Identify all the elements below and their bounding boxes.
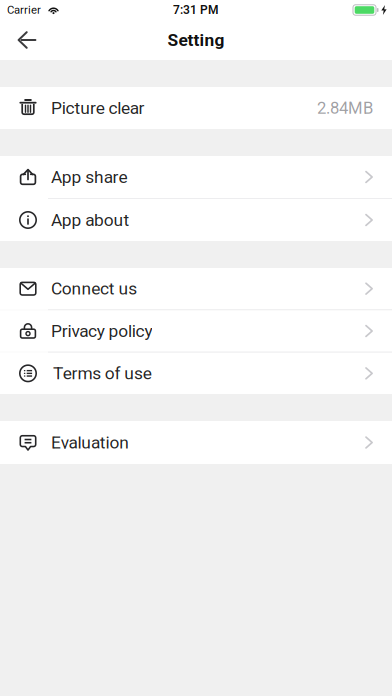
button[interactable]: Terms of use	[0, 353, 392, 394]
staticText: App about	[51, 210, 129, 230]
staticText: Connect us	[51, 278, 137, 299]
button[interactable]: App about	[0, 199, 392, 241]
staticText: Terms of use	[53, 363, 152, 383]
button[interactable]: Evaluation	[0, 421, 392, 464]
staticText: Picture clear	[51, 98, 145, 118]
button[interactable]: App share	[0, 156, 392, 198]
staticText: 2.84MB	[317, 98, 373, 118]
staticText: Privacy policy	[51, 321, 152, 341]
staticText: 7:31 PM	[173, 3, 219, 17]
staticText: Carrier	[7, 3, 41, 17]
staticText: Evaluation	[51, 432, 129, 453]
staticText: Setting	[167, 30, 224, 50]
button[interactable]: Back	[5, 20, 49, 60]
button[interactable]: Privacy policy	[0, 310, 392, 352]
staticText: App share	[51, 167, 127, 187]
button[interactable]: Picture clear	[0, 87, 392, 129]
button[interactable]: Connect us	[0, 268, 392, 309]
